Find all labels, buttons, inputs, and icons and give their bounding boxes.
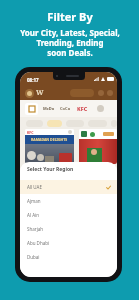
staticText: Sharjah <box>27 226 44 232</box>
button[interactable]: Filter chip <box>47 120 62 127</box>
staticText: Dubai <box>27 254 40 260</box>
button[interactable] <box>79 129 117 164</box>
staticText: 08:17 <box>27 77 39 83</box>
button[interactable]: Abu Dhabi <box>20 236 117 250</box>
button[interactable]: KFC <box>25 129 74 164</box>
staticText: All UAE <box>27 184 42 190</box>
button[interactable]: All UAE <box>20 180 117 194</box>
staticText: CoCa <box>60 106 71 111</box>
staticText: Al Ain <box>27 212 40 218</box>
button[interactable]: Ajman <box>20 194 117 208</box>
button[interactable]: Menu <box>25 89 34 98</box>
staticText: KFC <box>77 105 88 112</box>
staticText: Ajman <box>27 198 41 204</box>
staticText: Your City, Latest, Special, Trending, En… <box>20 27 120 58</box>
button[interactable]: Cart <box>98 90 104 96</box>
staticText: W <box>36 88 44 98</box>
button[interactable]: Brand <box>25 103 38 115</box>
staticText: KFC <box>27 130 34 135</box>
button[interactable]: Search <box>70 89 94 97</box>
staticText: Select Your Region <box>27 166 74 173</box>
button[interactable]: Sharjah <box>20 222 117 236</box>
button[interactable]: Al Ain <box>20 208 117 222</box>
staticText: McDo <box>43 106 55 111</box>
button[interactable]: Dubai <box>20 250 117 264</box>
staticText: Abu Dhabi <box>27 240 50 246</box>
button[interactable]: Profile <box>107 90 113 96</box>
button[interactable]: Filter chip <box>111 120 117 127</box>
staticText: Filter By <box>47 9 93 24</box>
staticText: RAMADAN DELIGHTS <box>31 137 68 142</box>
